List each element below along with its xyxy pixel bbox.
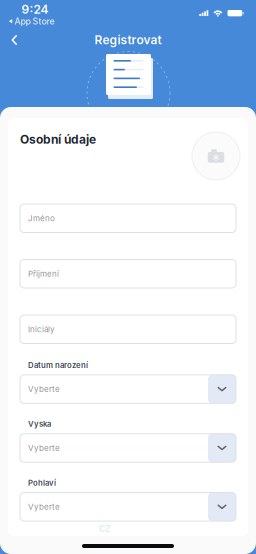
button[interactable]: Vyberte xyxy=(20,434,236,462)
staticText: Registrovat xyxy=(94,33,161,47)
staticText: Osobní údaje xyxy=(20,132,96,146)
staticText: Iniciály xyxy=(28,324,54,334)
staticText: Jméno xyxy=(28,213,55,223)
button[interactable]: Back xyxy=(0,29,31,51)
staticText: Pohlaví xyxy=(28,478,56,488)
staticText: Příjmení xyxy=(28,269,59,279)
staticText: 9:24 xyxy=(21,2,48,17)
staticText: Vyberte xyxy=(28,502,60,512)
staticText: Vyberte xyxy=(28,443,60,453)
staticText: Datum narození xyxy=(28,360,88,370)
button[interactable]: Add photo xyxy=(192,132,240,180)
staticText: Vyberte xyxy=(28,384,60,394)
button[interactable]: Vyberte xyxy=(20,375,236,403)
staticText: App Store xyxy=(14,16,54,26)
staticText: Výška xyxy=(28,419,51,429)
staticText: CZ xyxy=(99,523,111,534)
button[interactable]: Vyberte xyxy=(20,493,236,521)
